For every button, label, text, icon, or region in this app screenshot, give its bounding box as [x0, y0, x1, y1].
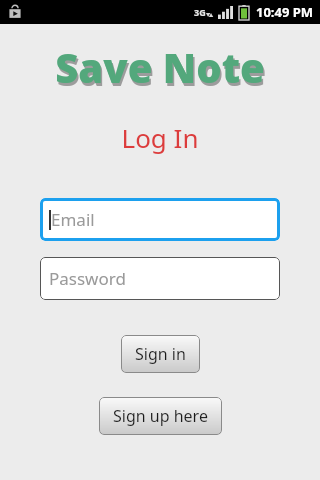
- staticText: 3G: [194, 6, 206, 18]
- staticText: Sign up here: [113, 405, 208, 427]
- staticText: Email: [51, 208, 95, 231]
- staticText: Password: [49, 267, 126, 290]
- button[interactable]: Sign up here: [99, 397, 222, 435]
- staticText: Log In: [0, 120, 320, 155]
- staticText: Save Note: [0, 40, 320, 92]
- staticText: Save Note: [3, 43, 320, 92]
- button[interactable]: Sign in: [121, 335, 200, 373]
- staticText: 10:49 PM: [256, 3, 314, 21]
- staticText: Sign in: [135, 343, 186, 365]
- button[interactable]: Email: [40, 198, 280, 241]
- button[interactable]: Password: [40, 257, 280, 300]
